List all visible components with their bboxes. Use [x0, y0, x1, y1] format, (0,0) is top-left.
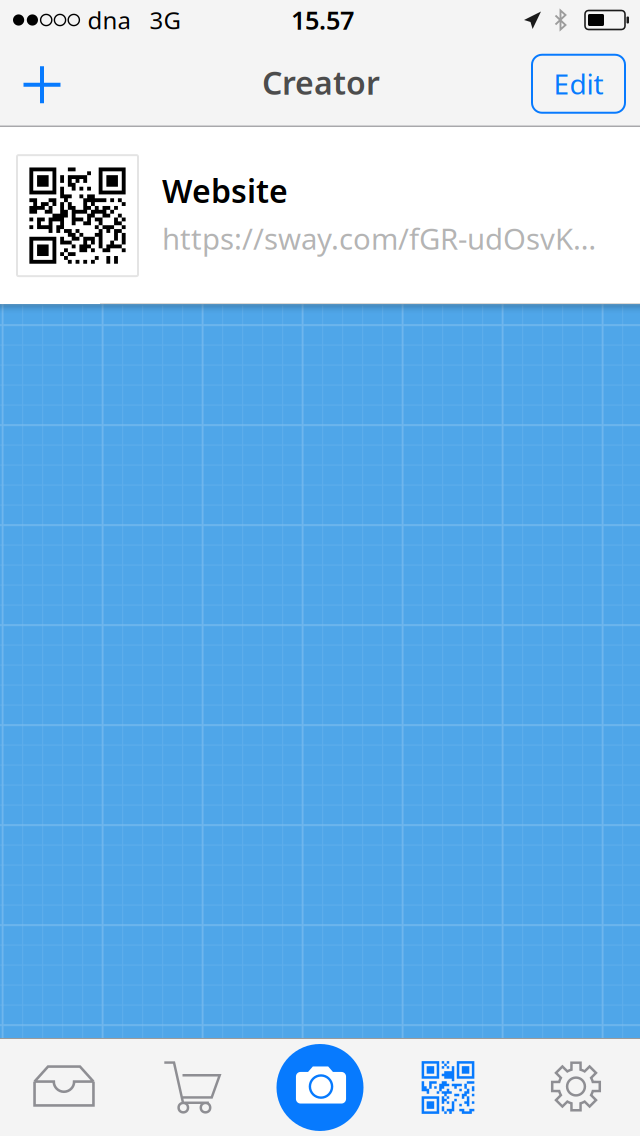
staticText: Creator: [262, 61, 380, 103]
button[interactable]: Settings: [512, 1039, 640, 1136]
staticText: https://sway.com/fGR-udOsvK…: [162, 219, 596, 258]
button[interactable]: Edit: [532, 40, 640, 126]
staticText: 15.57: [291, 3, 354, 37]
button[interactable]: Scan QR code: [384, 1039, 512, 1136]
staticText: dna: [87, 4, 130, 36]
button[interactable]: Inbox: [0, 1039, 128, 1136]
button[interactable]: Cart: [128, 1039, 256, 1136]
button[interactable]: Website: [0, 127, 640, 304]
button[interactable]: Add: [0, 40, 84, 126]
button[interactable]: Camera: [276, 1044, 363, 1131]
staticText: Website: [162, 169, 288, 212]
staticText: Edit: [553, 65, 603, 102]
staticText: 3G: [149, 4, 180, 36]
